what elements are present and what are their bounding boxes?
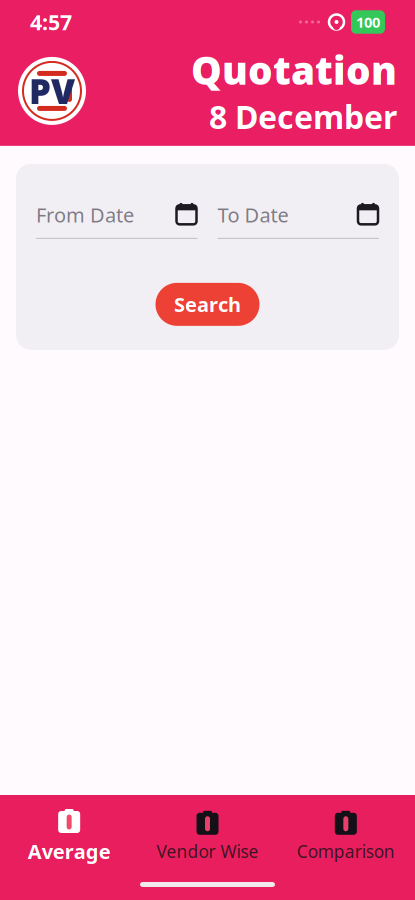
staticText: PV <box>29 68 75 114</box>
staticText: 4:57 <box>30 8 72 36</box>
staticText: Vendor Wise <box>156 840 258 863</box>
staticText: Average <box>28 838 111 865</box>
staticText: To Date <box>217 202 288 228</box>
button[interactable]: Search <box>155 283 259 326</box>
staticText: Quotation <box>191 44 397 95</box>
button[interactable]: Vendor Wise <box>138 805 277 869</box>
button[interactable]: From Date <box>36 202 197 239</box>
staticText: 8 December <box>209 95 397 138</box>
staticText: Search <box>174 291 241 318</box>
button[interactable]: To Date <box>217 202 379 239</box>
staticText: 100 <box>356 12 380 32</box>
staticText: Comparison <box>297 840 395 863</box>
button[interactable]: Comparison <box>277 805 415 869</box>
staticText: From Date <box>36 202 134 228</box>
button[interactable]: Average <box>0 803 138 871</box>
